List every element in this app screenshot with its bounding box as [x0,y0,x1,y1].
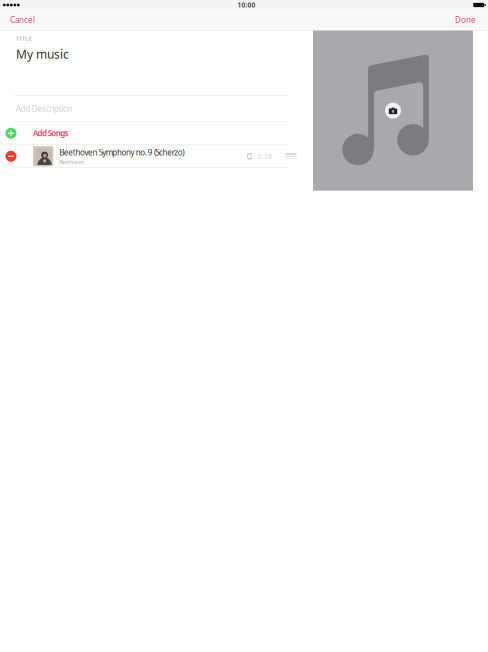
staticText: Beethoven Symphony no. 9 (Scherzo) [59,147,184,158]
staticText: 10:00 [237,1,255,9]
button[interactable]: Cancel [0,10,43,30]
button[interactable]: Add Songs [0,122,301,144]
button[interactable]: Choose artwork [313,31,473,191]
staticText: My music [16,46,69,62]
staticText: 0:16 [257,152,272,161]
staticText: Add Songs [33,128,69,138]
staticText: TITLE [16,35,32,42]
staticText: Done [455,15,476,25]
staticText: Beethoven [59,158,84,165]
button[interactable]: Reorder [284,146,297,167]
staticText: Add Description [16,103,73,114]
button[interactable]: Remove song [0,145,16,168]
button[interactable]: Add Description [0,96,301,121]
staticText: Cancel [10,15,35,25]
button[interactable]: Done [447,10,488,30]
